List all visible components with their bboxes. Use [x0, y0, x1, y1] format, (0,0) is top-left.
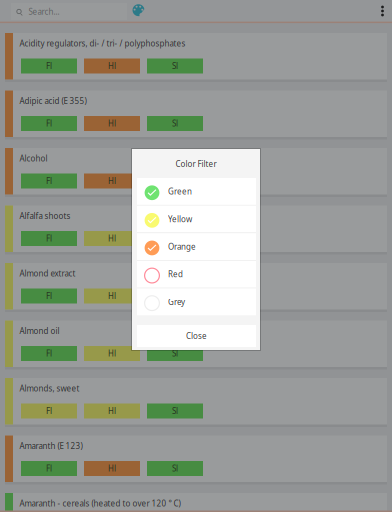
- staticText: Amaranth - cereals (heated to over 120 °…: [20, 498, 181, 509]
- button[interactable]: More options: [371, 0, 392, 22]
- button[interactable]: Adipic acid (E 355): [5, 90, 387, 137]
- staticText: Almond oil: [20, 326, 60, 336]
- staticText: Sl: [172, 463, 178, 474]
- button[interactable]: Almond oil: [5, 320, 387, 367]
- staticText: Hl: [108, 118, 116, 129]
- button[interactable]: Close: [137, 325, 256, 347]
- staticText: Hl: [108, 348, 116, 359]
- staticText: Almonds, sweet: [20, 383, 80, 394]
- staticText: Sl: [172, 291, 178, 301]
- staticText: Orange: [168, 241, 196, 252]
- staticText: Sl: [172, 406, 178, 416]
- button[interactable]: Grey: [137, 288, 256, 315]
- staticText: Sl: [172, 233, 178, 244]
- staticText: Adipic acid (E 355): [20, 96, 87, 106]
- staticText: Fl: [46, 348, 52, 359]
- staticText: Fl: [46, 61, 52, 71]
- staticText: Grey: [168, 296, 185, 307]
- button[interactable]: Color filter: [127, 0, 149, 21]
- staticText: Almond extract: [20, 268, 76, 279]
- button[interactable]: Almond extract: [5, 263, 387, 309]
- staticText: Fl: [46, 176, 52, 186]
- staticText: Acidity regulators, di- / tri- / polypho…: [20, 38, 186, 49]
- staticText: Fl: [46, 233, 52, 244]
- staticText: Sl: [172, 176, 178, 186]
- staticText: Fl: [46, 463, 52, 474]
- staticText: Close: [186, 331, 207, 341]
- button[interactable]: Yellow: [137, 206, 256, 232]
- staticText: Fl: [46, 291, 52, 301]
- staticText: Fl: [46, 118, 52, 129]
- button[interactable]: Acidity regulators, di- / tri- / polypho…: [5, 33, 387, 79]
- staticText: Hl: [108, 233, 116, 244]
- button[interactable]: Almonds, sweet: [5, 378, 387, 424]
- staticText: Red: [168, 269, 183, 279]
- staticText: Hl: [108, 291, 116, 301]
- staticText: Hl: [108, 406, 116, 416]
- staticText: Fl: [46, 406, 52, 416]
- staticText: Color Filter: [175, 159, 216, 169]
- staticText: Search...: [28, 6, 59, 17]
- button[interactable]: Amaranth - cereals (heated to over 120 °…: [5, 493, 387, 512]
- staticText: Sl: [172, 61, 178, 71]
- staticText: Yellow: [168, 214, 192, 224]
- button[interactable]: Alfalfa shoots: [5, 205, 387, 252]
- staticText: Sl: [172, 348, 178, 359]
- button[interactable]: Alcohol: [5, 148, 387, 194]
- staticText: Green: [168, 186, 192, 197]
- button[interactable]: Red: [137, 261, 256, 288]
- staticText: Alcohol: [20, 153, 48, 164]
- staticText: Hl: [108, 61, 116, 71]
- staticText: Hl: [108, 176, 116, 186]
- staticText: Amaranth (E 123): [20, 441, 83, 451]
- button[interactable]: Amaranth (E 123): [5, 435, 387, 482]
- staticText: Alfalfa shoots: [20, 211, 71, 221]
- staticText: Sl: [172, 118, 178, 129]
- button[interactable]: Orange: [137, 233, 256, 260]
- button[interactable]: Green: [137, 178, 256, 205]
- staticText: Hl: [108, 463, 116, 474]
